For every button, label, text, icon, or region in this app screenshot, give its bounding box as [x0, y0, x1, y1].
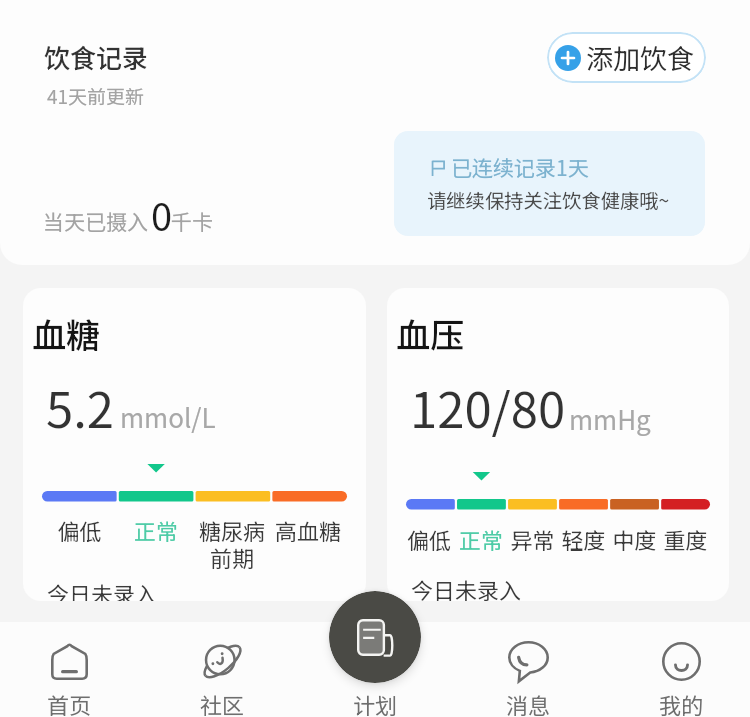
staticText: 添加饮食 — [586, 38, 694, 77]
button[interactable]: 我的 — [612, 622, 750, 668]
staticText: 血糖 — [32, 309, 100, 358]
staticText: 血压 — [396, 309, 464, 358]
staticText: 糖尿病 前期 — [194, 514, 270, 574]
staticText: 异常 — [507, 523, 558, 555]
staticText: 0 — [151, 187, 173, 242]
staticText: 计划 — [353, 688, 398, 717]
staticText: 正常 — [455, 523, 507, 555]
button[interactable]: 计划 — [306, 622, 444, 668]
staticText: 5.2 — [46, 371, 115, 442]
staticText: 千卡 — [171, 206, 213, 236]
staticText: 饮食记录 — [44, 38, 149, 76]
staticText: 重度 — [660, 523, 711, 555]
button[interactable]: 首页 — [0, 622, 138, 668]
staticText: 首页 — [47, 688, 92, 717]
staticText: 高血糖 — [270, 514, 346, 546]
button[interactable]: 计划 — [329, 591, 421, 683]
staticText: 我的 — [659, 688, 704, 717]
staticText: 120/80 — [410, 371, 566, 442]
staticText: 中度 — [609, 523, 660, 555]
button[interactable]: 添加饮食 — [547, 32, 706, 83]
staticText: mmHg — [569, 400, 651, 438]
button[interactable]: 消息 — [459, 622, 597, 668]
staticText: 请继续保持关注饮食健康哦~ — [427, 186, 670, 214]
staticText: mmol/L — [120, 398, 216, 436]
button[interactable]: 血糖 — [23, 288, 366, 601]
staticText: 消息 — [506, 688, 551, 717]
staticText: 41天前更新 — [47, 82, 145, 110]
button[interactable]: 社区 — [153, 622, 291, 668]
staticText: 已连续记录1天 — [451, 152, 589, 182]
staticText: 今日未录入 — [47, 577, 158, 601]
staticText: 轻度 — [558, 523, 609, 555]
staticText: 当天已摄入 — [43, 206, 148, 236]
button[interactable]: 血压 — [387, 288, 729, 601]
staticText: 社区 — [200, 688, 245, 717]
staticText: 偏低 — [403, 523, 455, 555]
staticText: 今日未录入 — [411, 573, 522, 601]
staticText: 正常 — [118, 514, 194, 546]
staticText: 偏低 — [41, 514, 118, 546]
